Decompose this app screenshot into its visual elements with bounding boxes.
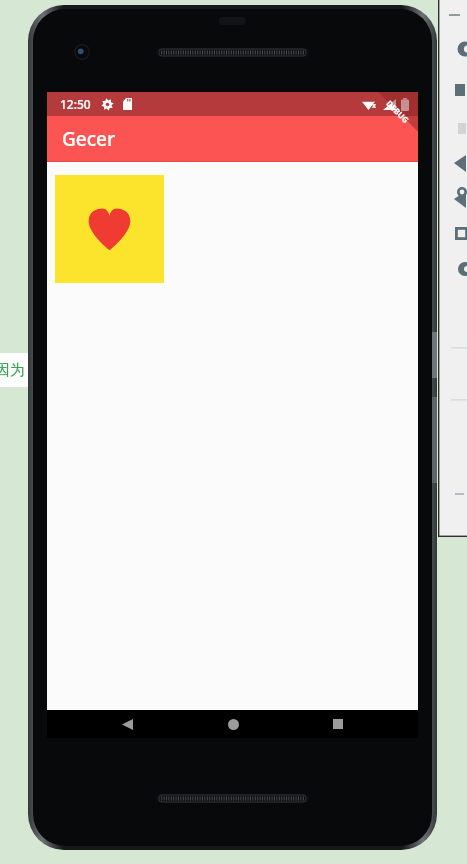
staticText: DEBUG — [384, 98, 412, 125]
button[interactable]: Home — [207, 710, 259, 738]
staticText: 因为 — [0, 361, 25, 380]
staticText: Gecer — [62, 126, 115, 152]
button[interactable]: Favorite — [55, 175, 164, 283]
staticText: 12:50 — [60, 96, 91, 112]
button[interactable]: Recent apps — [312, 710, 364, 738]
staticText: x — [372, 101, 377, 111]
button[interactable]: Back — [101, 710, 153, 738]
